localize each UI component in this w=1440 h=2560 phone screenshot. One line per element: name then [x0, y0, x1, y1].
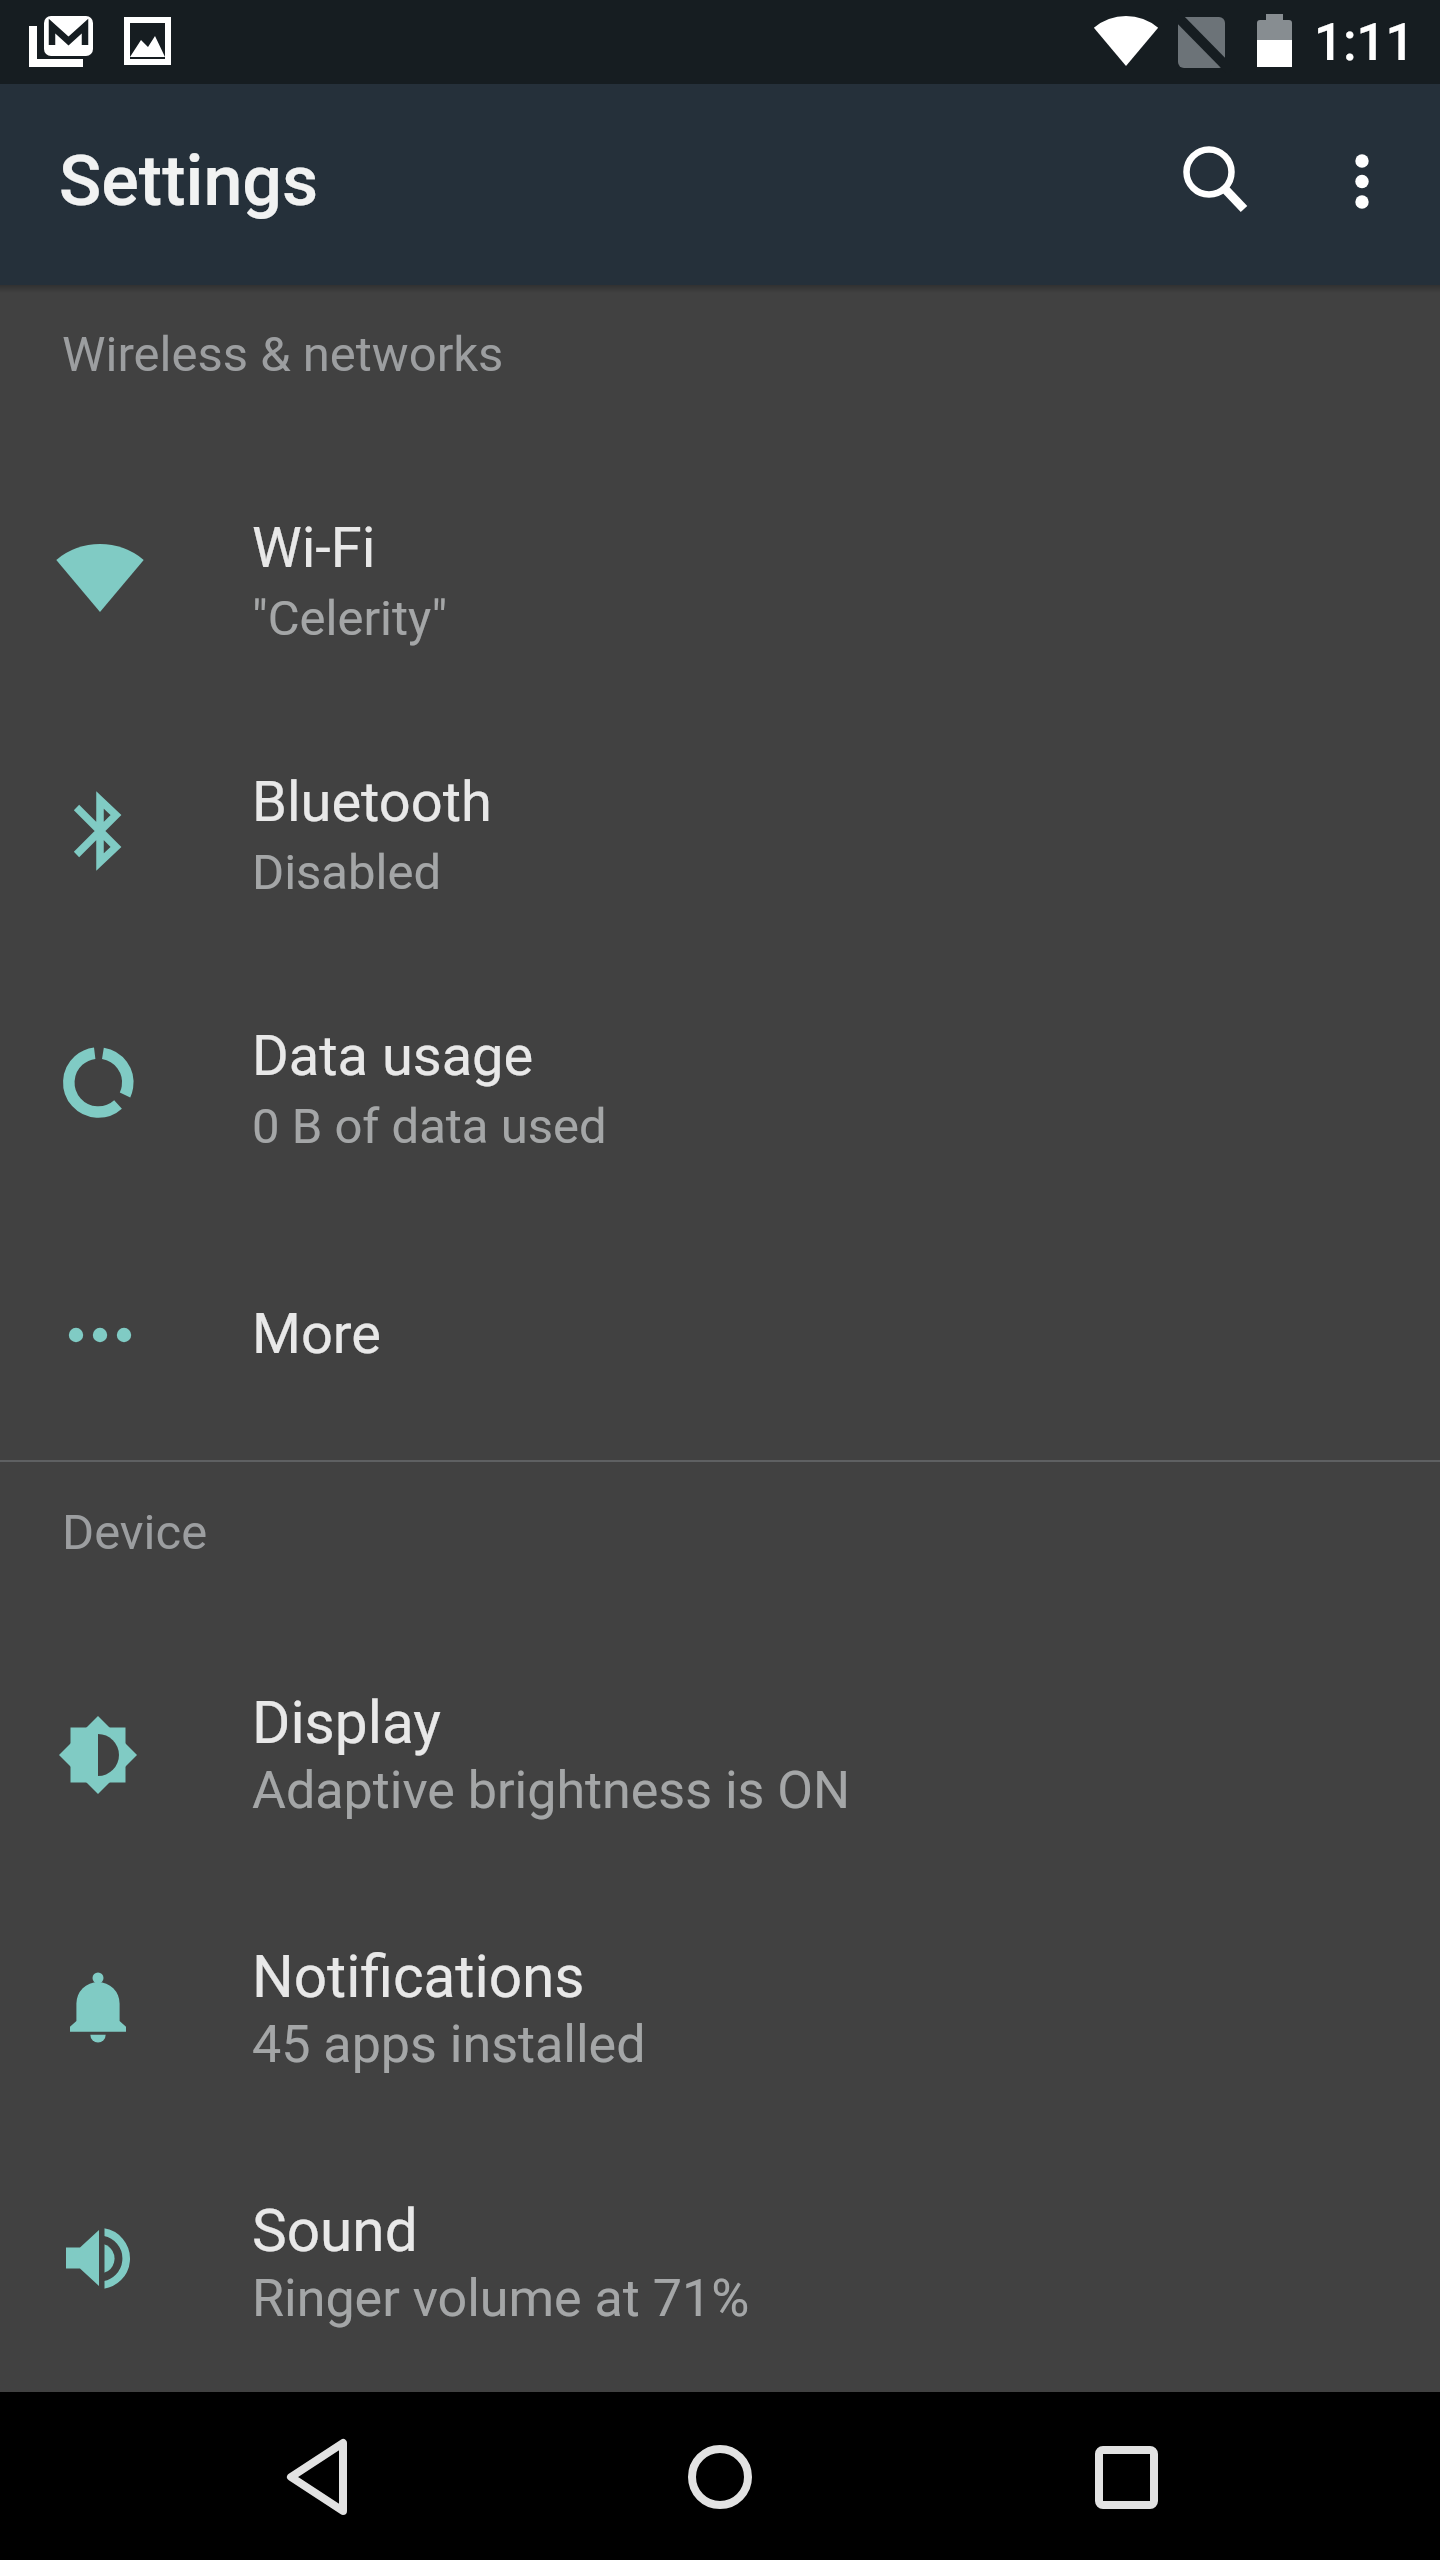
- button[interactable]: Notifications: [0, 1880, 1440, 2134]
- staticText: Display: [252, 1689, 441, 1758]
- staticText: 0 B of data used: [252, 1098, 607, 1155]
- staticText: "Celerity": [252, 590, 448, 647]
- button[interactable]: [1155, 114, 1267, 226]
- staticText: 45 apps installed: [252, 2014, 646, 2075]
- button[interactable]: [664, 2421, 776, 2533]
- button[interactable]: [260, 2421, 372, 2533]
- staticText: Settings: [59, 140, 319, 222]
- staticText: Data usage: [252, 1023, 534, 1089]
- staticText: Notifications: [252, 1943, 585, 2012]
- button[interactable]: More: [0, 1208, 1440, 1462]
- staticText: Bluetooth: [252, 769, 492, 835]
- button[interactable]: Bluetooth: [0, 700, 1440, 954]
- button[interactable]: Data usage: [0, 954, 1440, 1208]
- button[interactable]: Sound: [0, 2134, 1440, 2388]
- button[interactable]: Display: [0, 1626, 1440, 1880]
- button[interactable]: [1070, 2421, 1182, 2533]
- staticText: Device: [62, 1504, 208, 1561]
- staticText: Wi-Fi: [252, 515, 376, 581]
- staticText: Adaptive brightness is ON: [252, 1760, 851, 1821]
- staticText: Disabled: [252, 844, 442, 901]
- staticText: Sound: [252, 2197, 418, 2266]
- button[interactable]: Wi-Fi: [0, 446, 1440, 700]
- staticText: 1:11: [1314, 13, 1415, 73]
- staticText: Wireless & networks: [62, 326, 504, 383]
- button[interactable]: [1306, 114, 1418, 226]
- staticText: More: [252, 1301, 381, 1367]
- staticText: Ringer volume at 71%: [252, 2268, 750, 2329]
